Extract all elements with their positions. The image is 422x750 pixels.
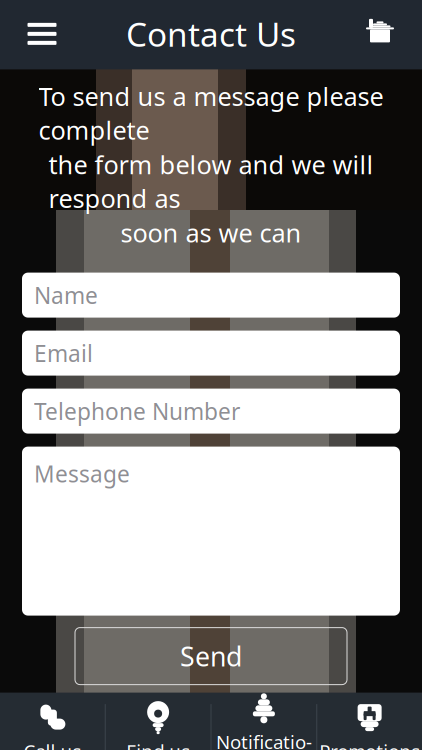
button[interactable]: Send bbox=[75, 628, 347, 685]
staticText: Name bbox=[34, 280, 98, 310]
button[interactable]: Menu bbox=[14, 6, 70, 62]
staticText: soon as we can bbox=[120, 216, 301, 250]
button[interactable]: Home bbox=[352, 6, 408, 62]
staticText: Email bbox=[34, 338, 93, 368]
button[interactable]: Telephone Number bbox=[22, 389, 400, 434]
staticText: the form below and we will respond as bbox=[48, 148, 373, 215]
button[interactable]: Message bbox=[22, 447, 400, 616]
button[interactable]: Email bbox=[22, 331, 400, 376]
button[interactable]: Find us bbox=[106, 693, 211, 750]
staticText: To send us a message please complete bbox=[38, 79, 383, 147]
button[interactable]: Call us bbox=[0, 693, 105, 750]
button[interactable]: Promotions bbox=[317, 693, 422, 750]
staticText: Notifications bbox=[216, 729, 312, 750]
staticText: Promotions bbox=[319, 739, 420, 750]
staticText: Send bbox=[180, 638, 242, 674]
button[interactable]: Notifications bbox=[211, 693, 316, 750]
staticText: Contact Us bbox=[126, 12, 296, 56]
staticText: Find us bbox=[126, 739, 190, 750]
staticText: Telephone Number bbox=[34, 396, 240, 426]
button[interactable]: Name bbox=[22, 273, 400, 318]
staticText: Call us bbox=[23, 739, 81, 750]
staticText: Message bbox=[34, 459, 130, 489]
